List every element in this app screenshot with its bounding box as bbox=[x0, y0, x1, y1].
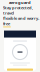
staticText: flexible and worry-free bbox=[3, 16, 39, 26]
staticText: Stay protected, travel bbox=[3, 5, 33, 16]
staticText: aeroguard bbox=[9, 0, 31, 5]
